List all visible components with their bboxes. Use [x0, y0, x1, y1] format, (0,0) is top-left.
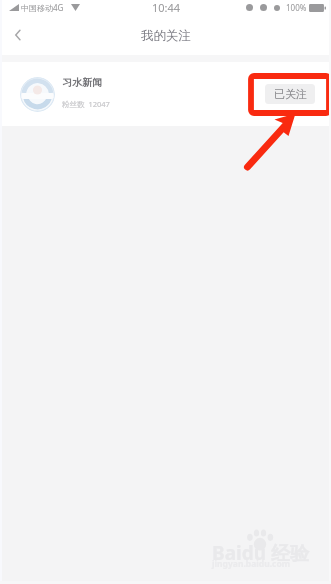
button[interactable]: 已关注: [265, 84, 315, 104]
staticText: 中国移动4G: [21, 2, 64, 13]
staticText: jingyan.baidu.com: [212, 558, 291, 570]
staticText: 习水新闻: [62, 76, 102, 89]
staticText: Baidu 经验: [212, 540, 309, 566]
staticText: 已关注: [274, 87, 307, 101]
staticText: 100%: [286, 2, 307, 13]
staticText: 粉丝数 12047: [62, 99, 110, 109]
staticText: 我的关注: [141, 28, 191, 44]
staticText: 10:44: [152, 0, 181, 14]
button[interactable]: 习水新闻: [0, 62, 331, 126]
button[interactable]: Back: [0, 17, 36, 53]
